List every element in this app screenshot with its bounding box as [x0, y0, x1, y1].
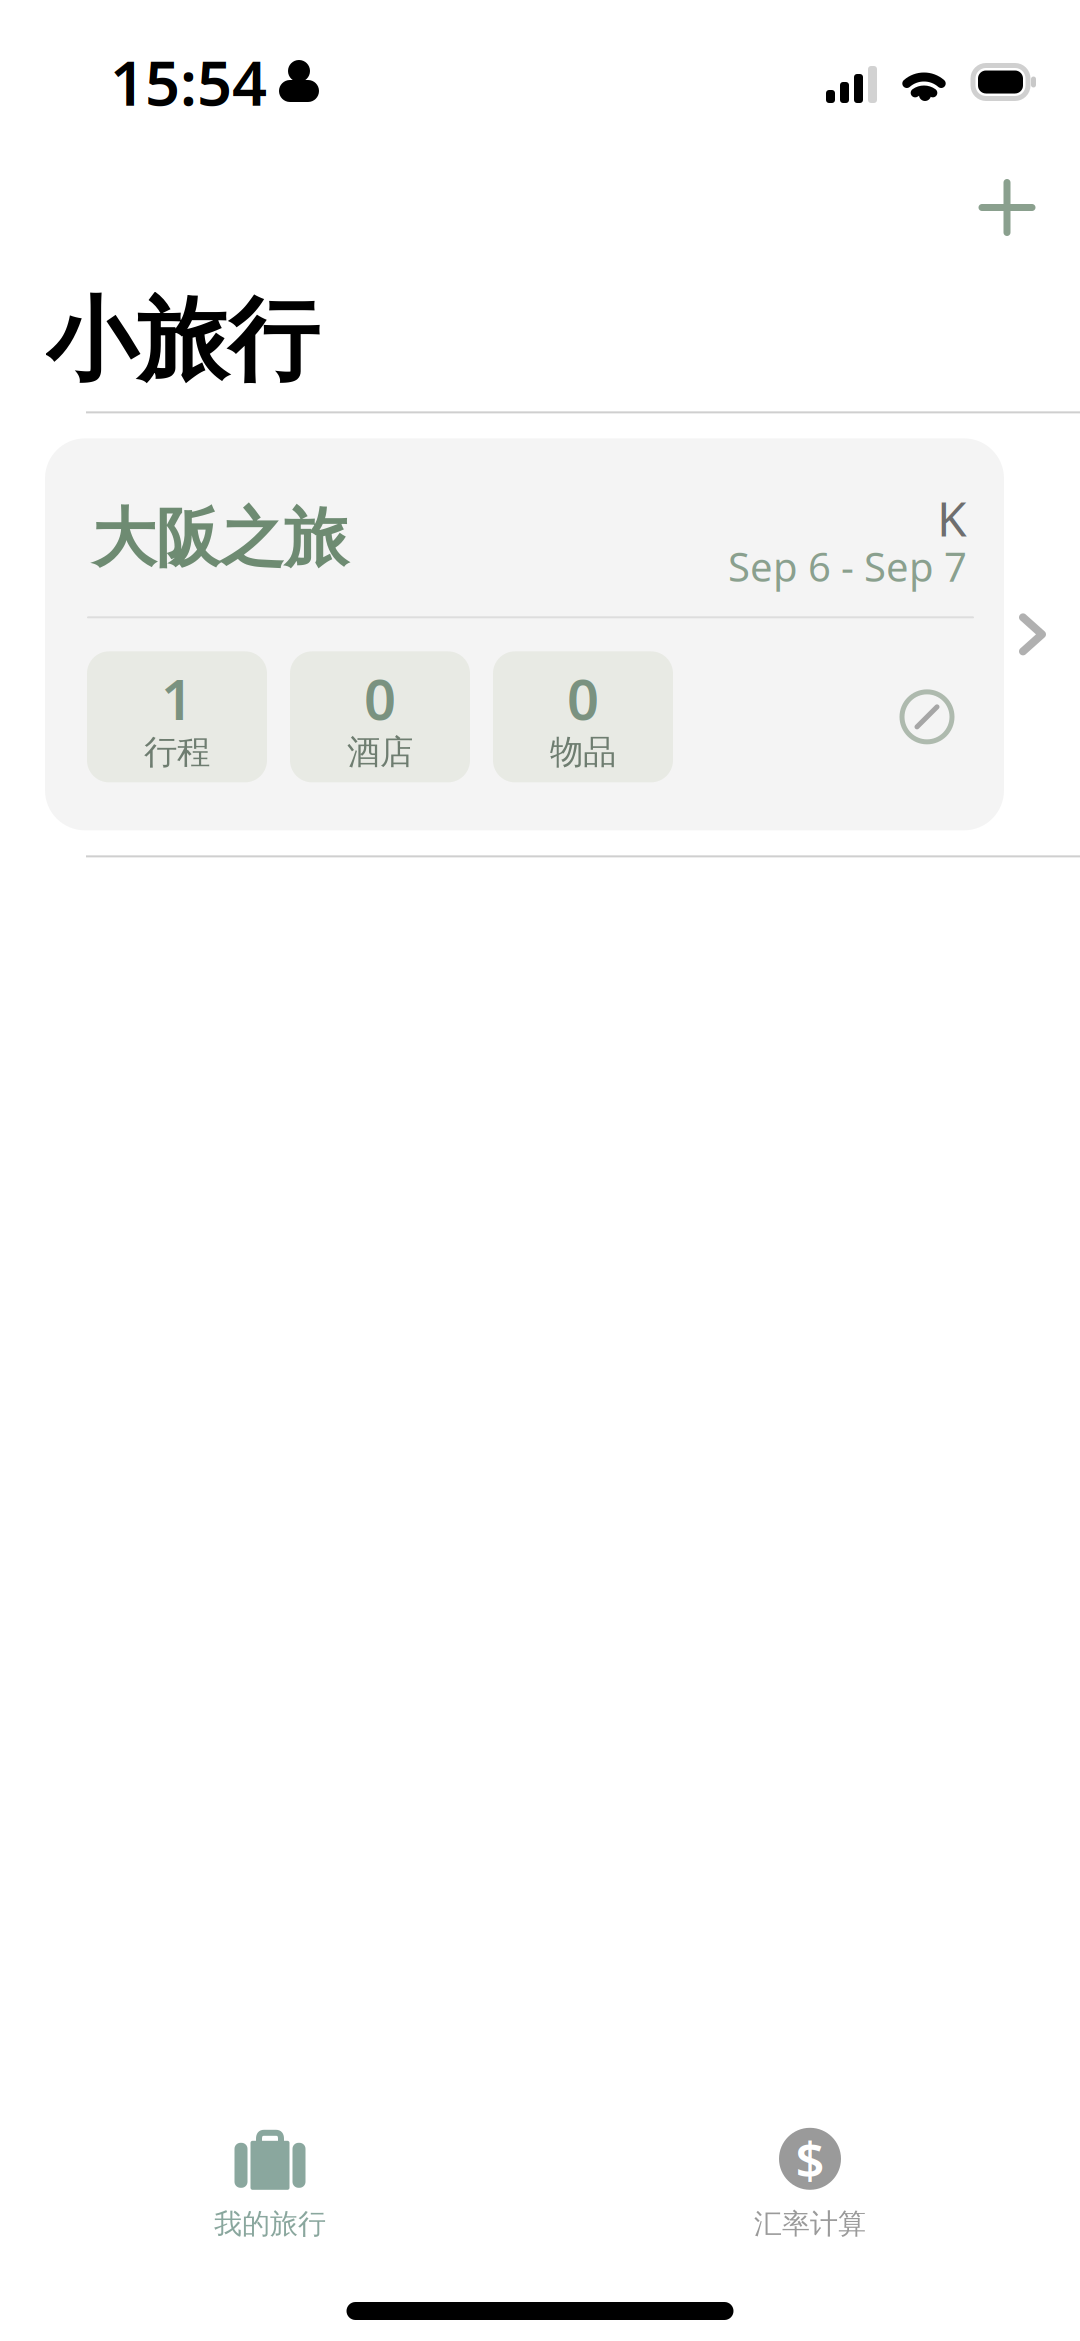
staticText: 行程 — [144, 732, 210, 772]
staticText: 大阪之旅 — [92, 499, 348, 578]
staticText: $ — [795, 2125, 824, 2192]
staticText: Sep 6 - Sep 7 — [728, 540, 967, 593]
staticText: 我的旅行 — [214, 2207, 326, 2241]
button[interactable]: 大阪之旅 — [0, 413, 1080, 855]
staticText: 汇率计算 — [754, 2207, 866, 2241]
button[interactable]: $ — [540, 2117, 1080, 2252]
button[interactable]: Add trip — [955, 155, 1059, 259]
staticText: 小旅行 — [46, 285, 319, 396]
staticText: 酒店 — [347, 732, 413, 772]
staticText: K — [937, 486, 967, 550]
staticText: 物品 — [550, 732, 616, 772]
button[interactable]: 我的旅行 — [0, 2117, 540, 2252]
staticText: 1 — [161, 661, 193, 736]
staticText: 15:54 — [110, 41, 267, 123]
staticText: 0 — [364, 661, 396, 736]
button[interactable]: Edit trip — [884, 674, 970, 760]
staticText: 0 — [567, 661, 599, 736]
